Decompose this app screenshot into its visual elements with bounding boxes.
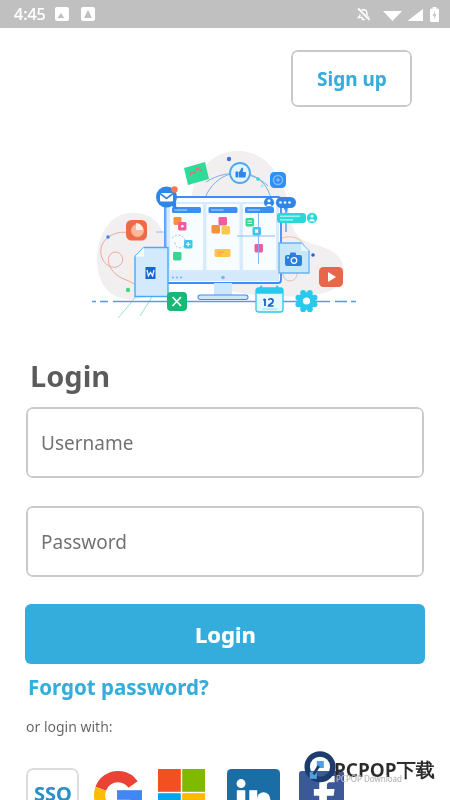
staticText: Password [41, 529, 127, 555]
button[interactable]: Sign in with Google [94, 771, 142, 800]
button[interactable]: Password [26, 506, 424, 577]
staticText: 4:45 [14, 3, 46, 25]
staticText: PCPOP下载 [334, 757, 435, 783]
staticText: Forgot password? [28, 673, 209, 701]
staticText: PCPOP Download [336, 773, 402, 784]
staticText: Login [30, 356, 111, 395]
staticText: Login [195, 619, 256, 649]
staticText: or login with: [26, 717, 113, 736]
button[interactable]: Sign up [291, 50, 412, 107]
button[interactable]: Sign in with LinkedIn [227, 769, 280, 800]
button[interactable]: Login [25, 604, 425, 664]
button[interactable]: Sign in with SSO [26, 768, 79, 800]
staticText: SSO [34, 780, 72, 800]
button[interactable]: Sign in with Microsoft [158, 769, 205, 800]
button[interactable]: Forgot password? [28, 673, 209, 701]
staticText: Username [41, 430, 134, 456]
button[interactable]: Sign in with Facebook [299, 771, 344, 800]
button[interactable]: Username [26, 407, 424, 478]
staticText: Sign up [317, 66, 387, 92]
